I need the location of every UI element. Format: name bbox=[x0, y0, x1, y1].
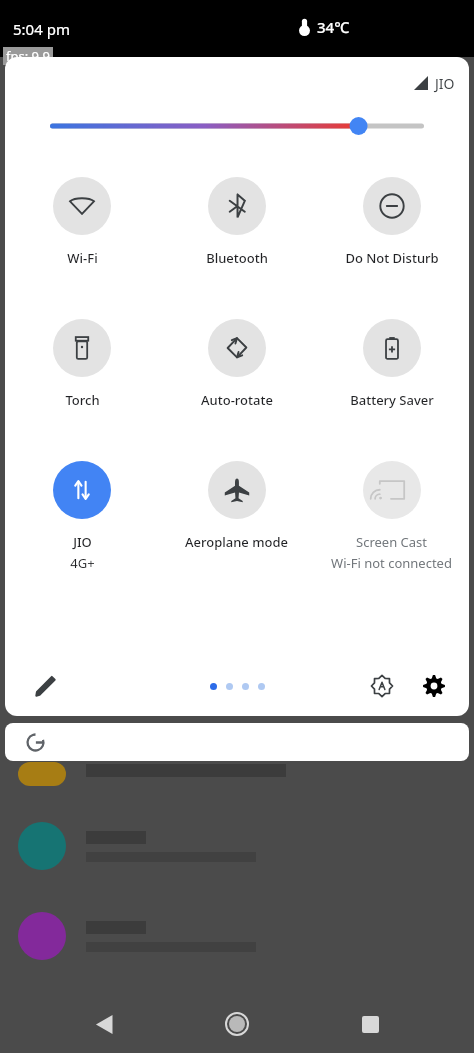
staticText: JIO bbox=[73, 533, 92, 551]
staticText: JIO bbox=[435, 74, 455, 93]
staticText: Torch bbox=[65, 391, 100, 409]
button[interactable]: Aeroplane mode bbox=[159, 461, 314, 551]
staticText: Auto-rotate bbox=[201, 391, 273, 409]
button[interactable]: Bluetooth bbox=[159, 177, 314, 267]
staticText: 5:04 pm bbox=[13, 19, 70, 39]
button[interactable]: Brightness bbox=[50, 109, 424, 143]
staticText: Do Not Disturb bbox=[345, 249, 439, 267]
button[interactable]: JIO bbox=[5, 461, 159, 572]
staticText: 4G+ bbox=[70, 554, 95, 572]
button[interactable]: Auto brightness bbox=[363, 667, 401, 705]
staticText: 34℃ bbox=[317, 17, 350, 37]
button[interactable]: Recents bbox=[348, 1002, 392, 1046]
button[interactable]: Battery Saver bbox=[314, 319, 469, 409]
staticText: Wi-Fi bbox=[67, 249, 98, 267]
button[interactable]: Settings bbox=[415, 667, 453, 705]
staticText: Aeroplane mode bbox=[185, 533, 288, 551]
button[interactable]: Search bbox=[5, 723, 469, 761]
button[interactable]: Edit tiles bbox=[25, 666, 65, 706]
button[interactable]: Wi-Fi bbox=[5, 177, 159, 267]
button[interactable]: Do Not Disturb bbox=[314, 177, 469, 267]
button[interactable]: Torch bbox=[5, 319, 159, 409]
staticText: Battery Saver bbox=[350, 391, 434, 409]
staticText: fps: 9.9 bbox=[6, 47, 50, 65]
staticText: Wi-Fi not connected bbox=[331, 554, 452, 572]
button[interactable]: Back bbox=[82, 1002, 126, 1046]
button[interactable]: Auto-rotate bbox=[159, 319, 314, 409]
button[interactable]: Home bbox=[215, 1002, 259, 1046]
button[interactable]: Screen Cast bbox=[314, 461, 469, 572]
staticText: Screen Cast bbox=[356, 533, 427, 551]
staticText: Bluetooth bbox=[206, 249, 268, 267]
